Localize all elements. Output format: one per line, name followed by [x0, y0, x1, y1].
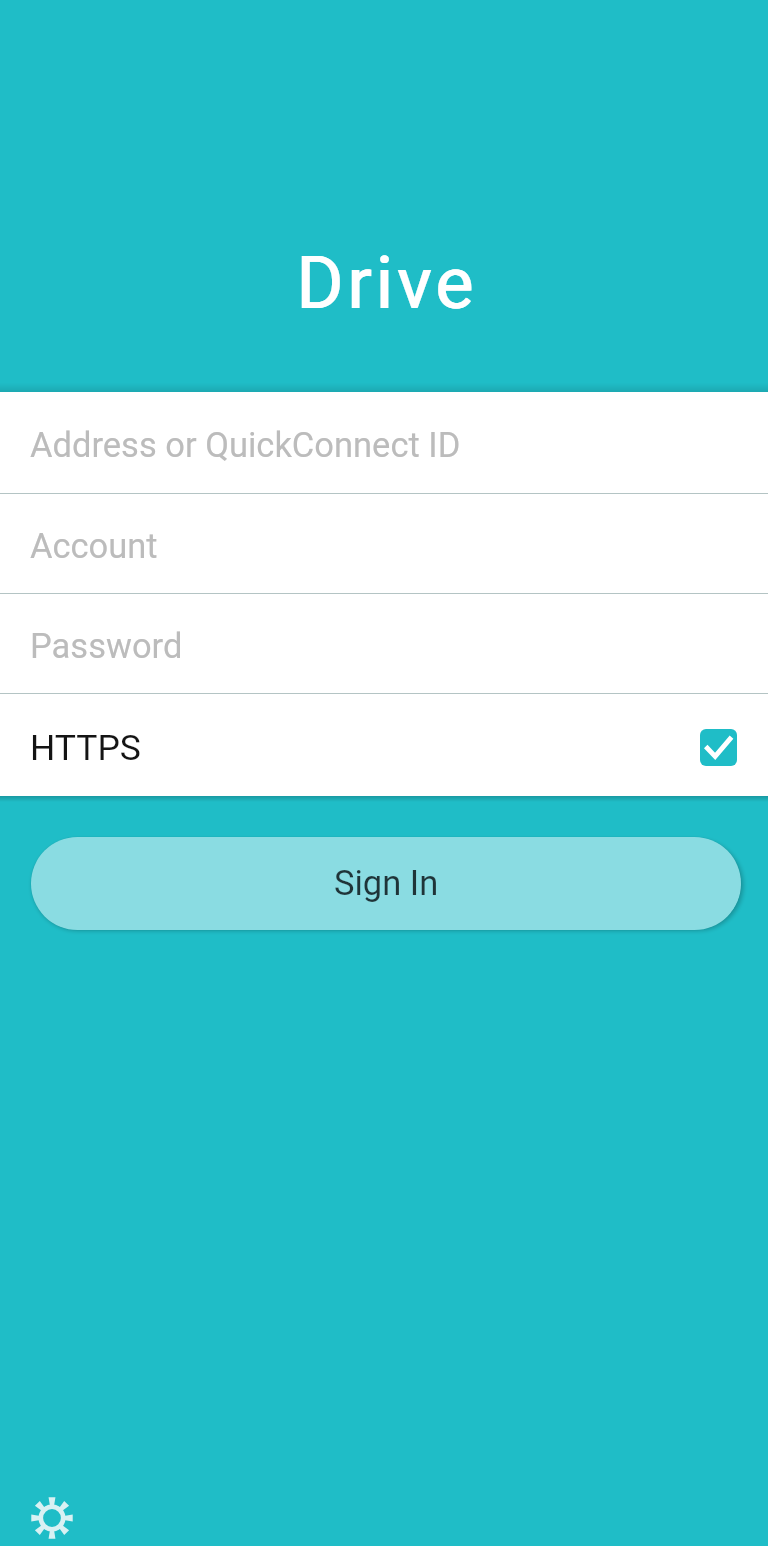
button[interactable]: Settings — [14, 1480, 90, 1546]
button[interactable]: Password — [0, 594, 768, 694]
staticText: Password — [30, 626, 183, 666]
button[interactable]: Account — [0, 494, 768, 594]
staticText: Drive — [296, 242, 478, 326]
staticText: Account — [30, 526, 158, 566]
button[interactable]: Address or QuickConnect ID — [0, 392, 768, 494]
staticText: Address or QuickConnect ID — [30, 425, 461, 465]
other: HTTPS enabled — [700, 729, 737, 766]
staticText: HTTPS — [30, 727, 141, 769]
button[interactable]: HTTPS — [0, 694, 768, 796]
button[interactable]: Sign In — [31, 837, 741, 930]
staticText: Drive — [297, 242, 479, 326]
staticText: Sign In — [334, 863, 439, 903]
